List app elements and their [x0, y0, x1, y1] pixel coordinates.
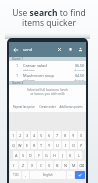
staticText: 0 — [80, 133, 83, 138]
button[interactable]: Add bonus points — [59, 101, 83, 112]
button[interactable]: A — [13, 151, 19, 159]
staticText: add more — [23, 69, 35, 71]
button[interactable]: X — [28, 161, 36, 169]
button[interactable]: ⌫ — [78, 161, 85, 169]
button[interactable]: Back — [13, 47, 19, 53]
button[interactable]: 3 — [24, 131, 30, 139]
button[interactable]: Drinks — [68, 47, 73, 52]
button[interactable]: English — [30, 171, 66, 179]
staticText: 9 — [72, 133, 75, 138]
button[interactable]: C — [37, 161, 45, 169]
staticText: 5 — [40, 133, 43, 138]
staticText: Repeat last price — [13, 105, 35, 109]
staticText: R — [33, 143, 36, 148]
staticText: . — [70, 173, 71, 177]
button[interactable]: O — [70, 141, 77, 149]
button[interactable]: 8 — [62, 131, 69, 139]
button[interactable]: 6 — [46, 131, 53, 139]
staticText: $6.50 — [75, 63, 85, 68]
button[interactable]: I — [62, 141, 69, 149]
staticText: Selected full business lunch or bonus yo… — [9, 88, 86, 96]
button[interactable]: ?123 — [10, 171, 21, 179]
button[interactable]: M — [70, 161, 77, 169]
staticText: F — [38, 153, 40, 158]
staticText: T — [40, 143, 43, 148]
button[interactable]: H — [51, 151, 58, 159]
button[interactable]: , — [22, 171, 29, 179]
button[interactable]: J — [59, 151, 66, 159]
staticText: 4 — [33, 133, 36, 138]
staticText: A — [15, 153, 18, 158]
staticText: Add bonus points — [59, 105, 83, 109]
staticText: send — [23, 47, 33, 52]
staticText: O — [72, 143, 75, 148]
staticText: Q — [12, 143, 15, 148]
staticText: add more — [23, 79, 35, 81]
button[interactable]: . — [67, 171, 74, 179]
staticText: Mushroom soup — [23, 73, 54, 78]
button[interactable]: Clear search — [57, 47, 62, 52]
button[interactable]: E — [24, 141, 30, 149]
button[interactable]: Enter — [75, 171, 85, 179]
staticText: M — [72, 163, 76, 168]
button[interactable]: Repeat last price — [12, 101, 35, 112]
button[interactable]: G — [43, 151, 50, 159]
button[interactable]: T — [38, 141, 45, 149]
button[interactable]: ⇧ — [10, 161, 18, 169]
button[interactable]: P — [78, 141, 85, 149]
button[interactable]: Create order — [35, 101, 59, 112]
staticText: Guest 1 — [12, 57, 24, 61]
staticText: B — [56, 163, 59, 168]
button[interactable]: B — [54, 161, 61, 169]
staticText: N — [64, 163, 67, 168]
staticText: H — [53, 153, 56, 158]
button[interactable]: V — [46, 161, 53, 169]
staticText: D — [29, 153, 32, 158]
staticText: G — [45, 153, 48, 158]
staticText: 1 — [16, 73, 19, 78]
button[interactable]: Account — [78, 47, 83, 52]
button[interactable]: L — [75, 151, 82, 159]
staticText: U — [56, 143, 59, 148]
button[interactable]: R — [31, 141, 37, 149]
button[interactable]: 1 — [9, 71, 86, 81]
button[interactable]: Y — [46, 141, 53, 149]
staticText: 2 — [19, 133, 22, 138]
staticText: , — [25, 173, 26, 177]
button[interactable]: 0 — [78, 131, 85, 139]
staticText: Z — [22, 163, 25, 168]
button[interactable]: F — [35, 151, 42, 159]
staticText: 1 — [16, 63, 19, 68]
button[interactable]: K — [67, 151, 74, 159]
button[interactable]: Q — [10, 141, 16, 149]
button[interactable]: S — [20, 151, 26, 159]
button[interactable]: W — [17, 141, 23, 149]
staticText: W — [18, 143, 22, 148]
staticText: Use search to find items quicker — [5, 7, 93, 29]
staticText: I — [65, 143, 67, 148]
staticText: 6 — [48, 133, 51, 138]
button[interactable]: 2 — [17, 131, 23, 139]
button[interactable]: U — [54, 141, 61, 149]
button[interactable]: 4 — [31, 131, 37, 139]
button[interactable]: 7 — [54, 131, 61, 139]
staticText: 7 — [56, 133, 59, 138]
button[interactable]: Z — [19, 161, 27, 169]
staticText: English — [43, 173, 53, 177]
button[interactable]: 1 — [10, 131, 16, 139]
staticText: E — [26, 143, 29, 148]
button[interactable]: 9 — [70, 131, 77, 139]
staticText: S — [22, 153, 25, 158]
button[interactable]: D — [27, 151, 34, 159]
staticText: 8 — [64, 133, 67, 138]
button[interactable]: N — [62, 161, 69, 169]
staticText: discount — [74, 69, 85, 71]
staticText: P — [80, 143, 83, 148]
button[interactable]: 5 — [38, 131, 45, 139]
button[interactable]: 1 — [9, 61, 86, 71]
staticText: discount — [74, 79, 85, 81]
staticText: X — [31, 163, 34, 168]
